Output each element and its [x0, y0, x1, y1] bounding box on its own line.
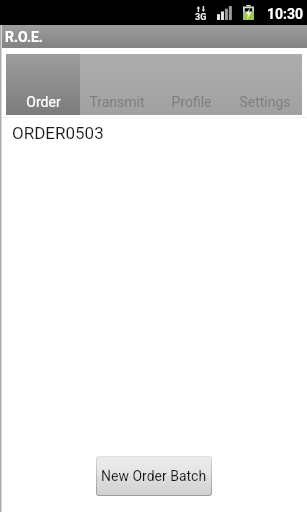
other: 3G data connection [195, 6, 207, 23]
button[interactable]: Transmit [80, 54, 154, 115]
staticText: Transmit [89, 94, 145, 110]
staticText: 10:30 [267, 6, 304, 22]
other: Signal strength [217, 6, 232, 20]
staticText: New Order Batch [101, 468, 207, 484]
button[interactable]: Order [6, 54, 80, 115]
staticText: R.O.E. [5, 29, 43, 45]
button[interactable]: New Order Batch [97, 457, 211, 495]
other: Battery charging [243, 5, 254, 20]
staticText: Settings [239, 94, 291, 110]
staticText: ORDER0503 [12, 123, 104, 143]
staticText: Profile [171, 94, 212, 110]
staticText: Order [26, 94, 61, 110]
staticText: 3G [195, 12, 207, 23]
button[interactable]: Settings [228, 54, 302, 115]
button[interactable]: Profile [154, 54, 228, 115]
